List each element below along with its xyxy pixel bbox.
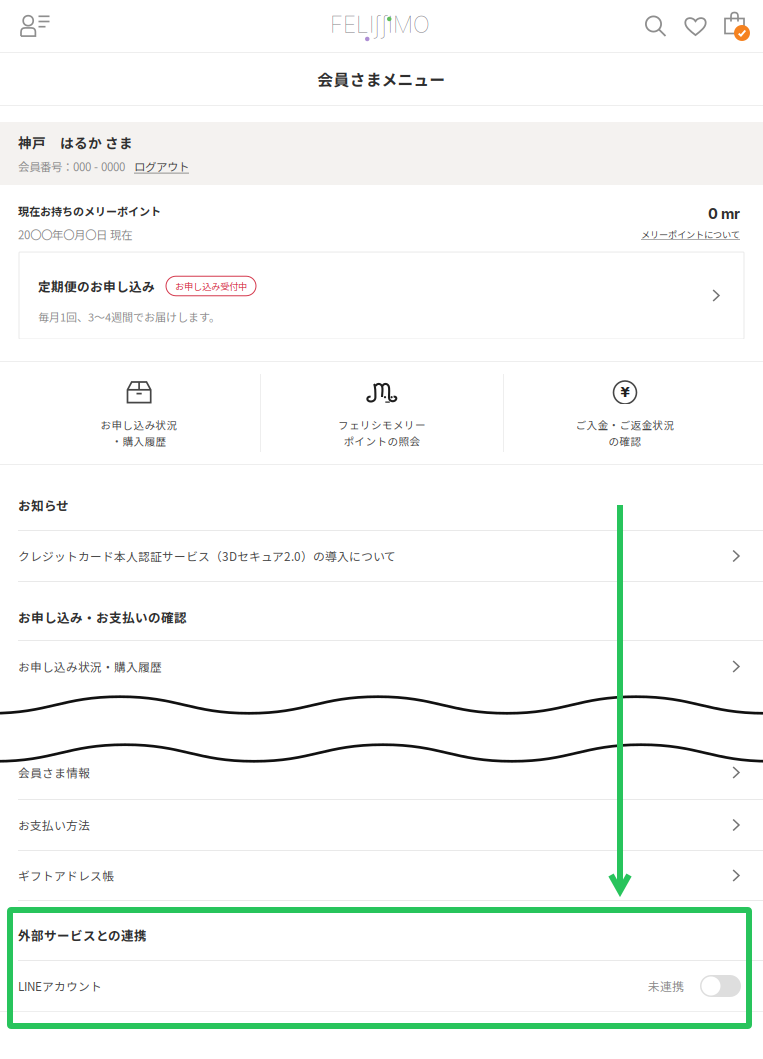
button[interactable]: LINEアカウント — [0, 961, 763, 1011]
staticText: お知らせ — [18, 496, 69, 514]
staticText: お支払い方法 — [18, 816, 90, 833]
staticText: 20〇〇年〇月〇日 現在 — [18, 226, 132, 243]
staticText: 定期便のお申し込み — [38, 277, 155, 295]
button[interactable]: Favorites — [684, 14, 707, 37]
staticText: お申し込み受付中 — [175, 279, 247, 293]
staticText: 現在お持ちのメリーポイント — [18, 203, 161, 219]
button[interactable]: お申し込み状況 — [18, 362, 260, 464]
staticText: 毎月1回、3〜4週間でお届けします。 — [38, 309, 220, 325]
staticText: FELI — [330, 11, 374, 38]
staticText: お申し込み・お支払いの確認 — [18, 608, 187, 626]
staticText: ギフトアドレス帳 — [18, 867, 114, 884]
staticText: 会員さまメニュー — [317, 68, 445, 90]
staticText: ポイントの照会 — [343, 433, 420, 449]
staticText: フェリシモメリー — [338, 417, 426, 432]
staticText: メリーポイントについて — [641, 227, 740, 241]
button[interactable]: お申し込み状況・購入履歴 — [0, 641, 763, 692]
staticText: ログアウト — [134, 158, 189, 175]
button[interactable]: ログアウト — [134, 158, 189, 175]
button[interactable]: 会員さま情報 — [0, 746, 763, 799]
button[interactable]: クレジットカード本人認証サービス（3Dセキュア2.0）の導入について — [0, 531, 763, 581]
staticText: 0 mr — [708, 205, 740, 222]
staticText: ご入金・ご返金状況 — [575, 417, 674, 432]
staticText: ¥ — [620, 385, 629, 400]
button[interactable]: Account menu — [18, 14, 53, 37]
staticText: お申し込み状況 — [100, 417, 177, 432]
staticText: の確認 — [608, 433, 641, 449]
staticText: 外部サービスとの連携 — [18, 926, 147, 944]
staticText: LINEアカウント — [18, 977, 102, 994]
button[interactable]: 定期便のお申し込み — [19, 252, 744, 339]
button[interactable]: フェリシモメリー — [261, 362, 503, 464]
button[interactable]: メリーポイントについて — [641, 227, 740, 241]
staticText: iMO — [388, 11, 430, 38]
button[interactable]: Cart — [724, 11, 750, 41]
staticText: 会員番号：000 - 0000 — [18, 158, 125, 175]
button[interactable]: ¥ — [504, 362, 746, 464]
staticText: お申し込み状況・購入履歴 — [18, 658, 162, 675]
staticText: ・購入履歴 — [111, 433, 166, 449]
staticText: 会員さま情報 — [18, 764, 90, 781]
staticText: ʃʃ — [374, 11, 388, 38]
staticText: クレジットカード本人認証サービス（3Dセキュア2.0）の導入について — [18, 547, 396, 564]
button[interactable]: Search — [644, 14, 667, 37]
button[interactable]: お支払い方法 — [0, 800, 763, 850]
staticText: 神戸 はるか さま — [18, 132, 133, 152]
button[interactable]: ギフトアドレス帳 — [0, 851, 763, 900]
staticText: 未連携 — [648, 977, 684, 994]
